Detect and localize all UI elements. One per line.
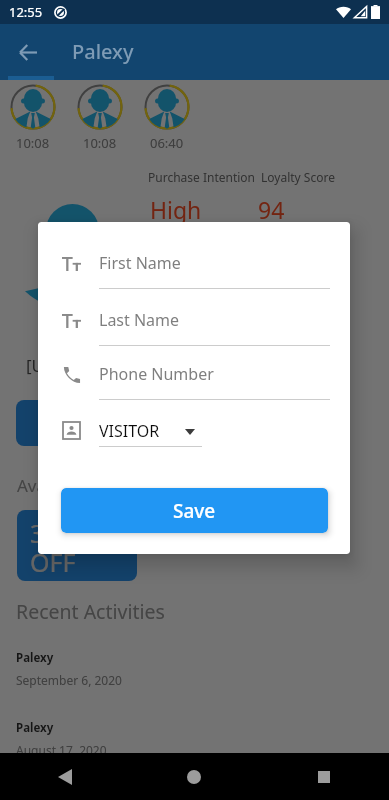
- staticText: [Unknown]: [26, 354, 114, 377]
- staticText: Loyalty Score: [261, 169, 335, 185]
- staticText: Recent Activities: [16, 598, 165, 625]
- button[interactable]: Home: [129, 753, 259, 800]
- staticText: Purchase Intention: [148, 169, 256, 185]
- staticText: Phone Number: [99, 363, 214, 385]
- staticText: Palexy: [16, 650, 54, 666]
- staticText: September 6, 2020: [16, 672, 122, 688]
- staticText: 30%: [30, 516, 80, 550]
- staticText: 12:55: [9, 3, 43, 21]
- staticText: Palexy: [16, 720, 54, 736]
- staticText: High: [150, 194, 202, 225]
- staticText: Last Name: [99, 309, 180, 331]
- staticText: 06:40: [150, 134, 184, 152]
- staticText: August 17, 2020: [16, 742, 107, 758]
- button[interactable]: Back: [0, 753, 129, 800]
- staticText: VISITOR: [99, 420, 160, 442]
- staticText: OFF: [30, 545, 76, 579]
- button[interactable]: Back: [4, 28, 52, 76]
- button[interactable]: VISITOR: [99, 424, 202, 454]
- staticText: First Name: [99, 252, 181, 274]
- staticText: Palexy: [72, 38, 134, 65]
- staticText: Save: [173, 498, 216, 524]
- staticText: 10:08: [83, 134, 117, 152]
- staticText: 94: [258, 194, 285, 225]
- button[interactable]: Recents: [259, 753, 389, 800]
- staticText: 10:08: [16, 134, 50, 152]
- staticText: Available Offers: [17, 474, 143, 497]
- button[interactable]: Save: [61, 488, 328, 533]
